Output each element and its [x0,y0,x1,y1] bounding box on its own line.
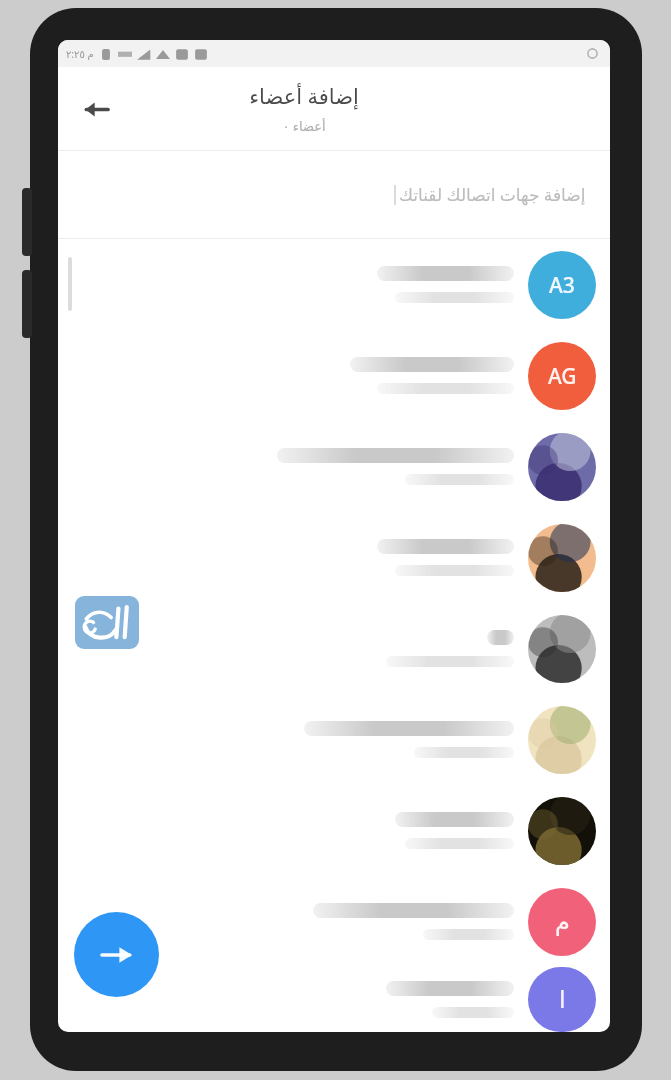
staticText: م ٢:٢٥ [66,47,94,61]
button[interactable] [58,603,610,694]
button[interactable] [58,785,610,876]
staticText: م [555,908,570,936]
button[interactable]: Next [74,912,159,997]
button[interactable]: إضافة جهات اتصالك لقناتك [58,151,610,238]
button[interactable]: Back [70,83,122,135]
staticText: ا [559,986,566,1014]
staticText: إضافة جهات اتصالك لقناتك [399,183,586,206]
staticText: أعضاء ٠ [282,117,326,135]
button[interactable]: م [58,876,610,967]
button[interactable] [58,421,610,512]
button[interactable]: A3 [58,239,610,330]
staticText: A3 [549,271,575,300]
button[interactable]: AG [58,330,610,421]
button[interactable] [58,512,610,603]
staticText: AG [548,362,577,391]
button[interactable] [58,694,610,785]
button[interactable]: ا [58,967,610,1032]
staticText: إضافة أعضاء [249,82,359,111]
